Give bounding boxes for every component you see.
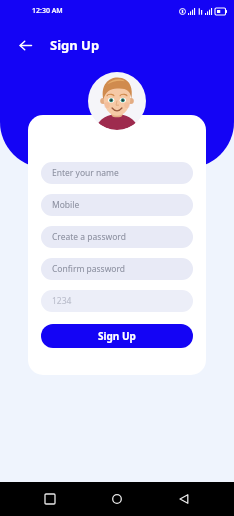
button[interactable]: 1234 xyxy=(41,290,193,312)
staticText: 1234 xyxy=(52,295,72,307)
staticText: Confirm password xyxy=(52,263,126,275)
button[interactable]: Create a password xyxy=(41,226,193,248)
staticText: 12:30 AM xyxy=(32,6,63,16)
button[interactable]: Enter your name xyxy=(41,162,193,184)
staticText: Create a password xyxy=(52,231,126,243)
button[interactable]: Back xyxy=(11,31,39,59)
button[interactable]: Sign Up xyxy=(41,324,193,348)
button[interactable]: Recents xyxy=(33,482,67,516)
staticText: Sign Up xyxy=(98,329,136,343)
button[interactable]: Back xyxy=(167,482,201,516)
staticText: Sign Up xyxy=(50,36,100,54)
staticText: Mobile xyxy=(52,199,80,211)
button[interactable]: Mobile xyxy=(41,194,193,216)
button[interactable]: Confirm password xyxy=(41,258,193,280)
staticText: Enter your name xyxy=(52,167,119,179)
button[interactable]: Home xyxy=(100,482,134,516)
